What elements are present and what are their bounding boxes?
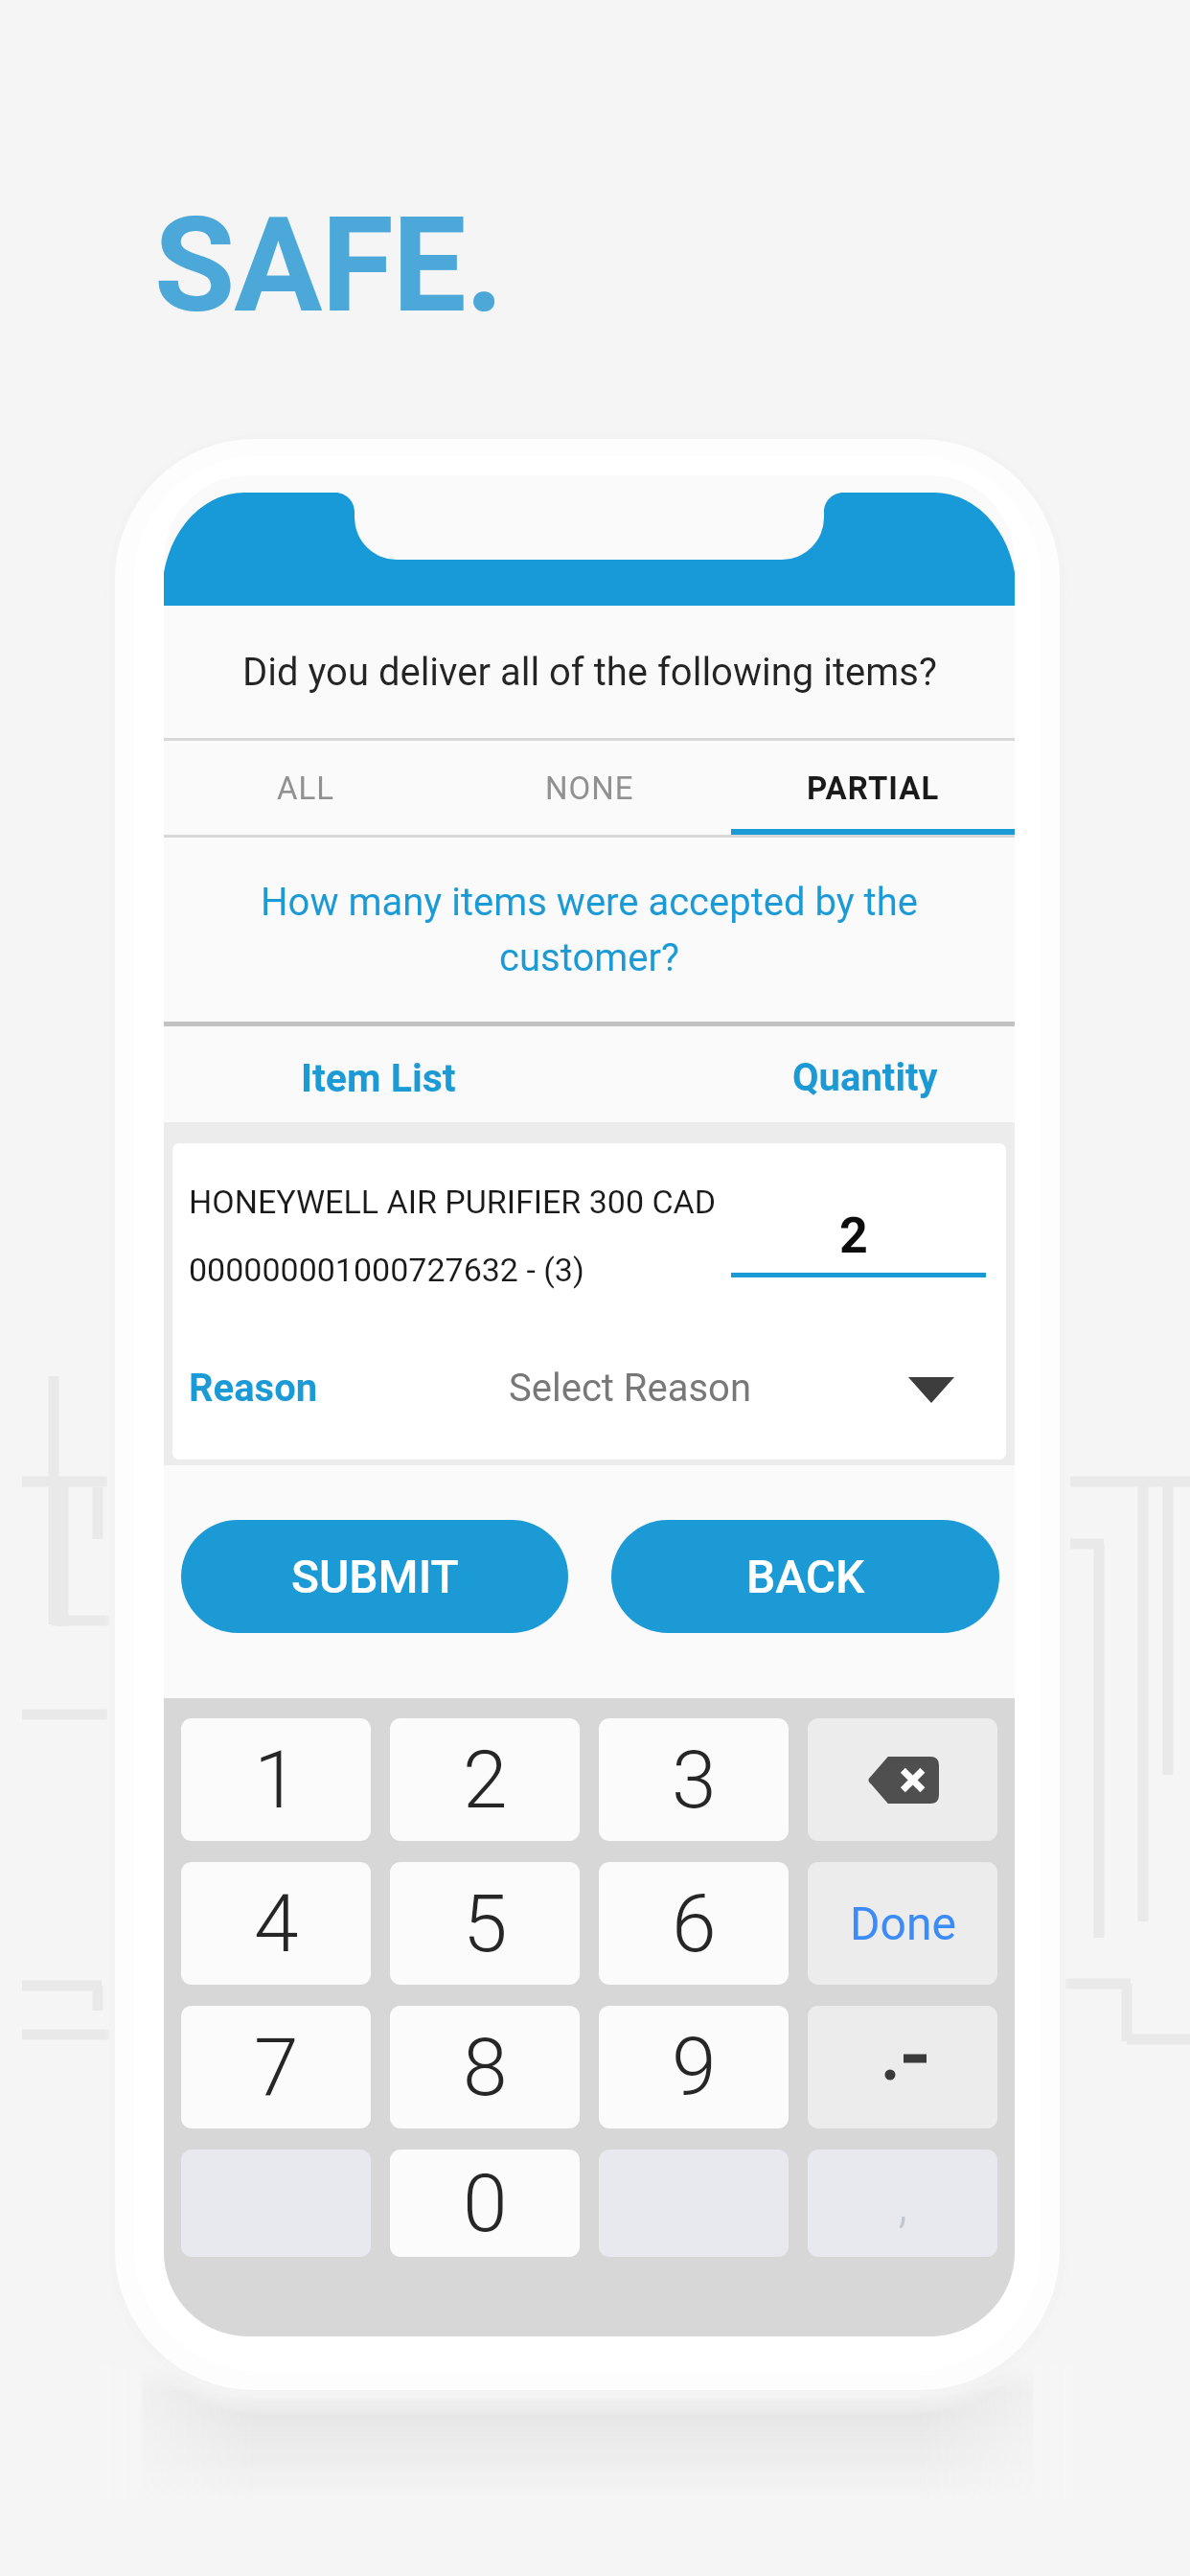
button[interactable]: Done bbox=[808, 1862, 997, 1985]
button[interactable]: 8 bbox=[390, 2006, 580, 2128]
staticText: 2 bbox=[463, 1733, 508, 1827]
button[interactable]: Select Reason dropdown bbox=[898, 1356, 965, 1423]
button[interactable]: 5 bbox=[390, 1862, 580, 1985]
staticText: 0 bbox=[463, 2156, 508, 2250]
button[interactable]: NONE bbox=[447, 741, 731, 835]
button[interactable]: 7 bbox=[181, 2006, 371, 2128]
button[interactable]: 1 bbox=[181, 1718, 371, 1841]
button[interactable]: 9 bbox=[599, 2006, 789, 2128]
button[interactable]: HONEYWELL AIR PURIFIER 300 CAD bbox=[172, 1143, 1006, 1460]
button[interactable]: Dot and dash key bbox=[808, 2006, 997, 2128]
staticText: SUBMIT bbox=[291, 1550, 459, 1603]
staticText: SAFE. bbox=[154, 189, 503, 343]
button[interactable]: 2 bbox=[390, 1718, 580, 1841]
button[interactable]: Backspace bbox=[808, 1718, 997, 1841]
staticText: ALL bbox=[277, 770, 335, 807]
button[interactable]: 4 bbox=[181, 1862, 371, 1985]
button[interactable]: 3 bbox=[599, 1718, 789, 1841]
staticText: 5 bbox=[463, 1876, 508, 1970]
staticText: BACK bbox=[746, 1550, 865, 1603]
button[interactable]: ALL bbox=[164, 741, 447, 835]
staticText: 6 bbox=[672, 1876, 717, 1970]
staticText: 2 bbox=[839, 1207, 868, 1265]
staticText: How many items were accepted by the cust… bbox=[202, 880, 976, 980]
staticText: Select Reason bbox=[509, 1366, 752, 1411]
staticText: Did you deliver all of the following ite… bbox=[242, 650, 937, 695]
button[interactable]: 6 bbox=[599, 1862, 789, 1985]
button[interactable]: SUBMIT bbox=[181, 1520, 568, 1633]
staticText: 000000001000727632 - (3) bbox=[189, 1251, 584, 1289]
button[interactable]: PARTIAL bbox=[731, 741, 1015, 835]
staticText: 1 bbox=[254, 1733, 299, 1827]
staticText: 8 bbox=[463, 2020, 508, 2114]
staticText: Quantity bbox=[792, 1055, 938, 1100]
button[interactable]: 0 bbox=[390, 2150, 580, 2257]
staticText: Reason bbox=[189, 1366, 318, 1411]
staticText: PARTIAL bbox=[807, 770, 940, 807]
staticText: 9 bbox=[672, 2020, 717, 2114]
staticText: Item List bbox=[301, 1055, 456, 1101]
staticText: NONE bbox=[545, 770, 634, 807]
staticText: HONEYWELL AIR PURIFIER 300 CAD bbox=[189, 1183, 717, 1221]
button[interactable]: BACK bbox=[611, 1520, 999, 1633]
staticText: Done bbox=[850, 1897, 956, 1950]
staticText: 7 bbox=[254, 2020, 299, 2114]
staticText: , bbox=[898, 2173, 908, 2234]
staticText: 3 bbox=[672, 1733, 717, 1827]
staticText: 4 bbox=[254, 1876, 299, 1970]
